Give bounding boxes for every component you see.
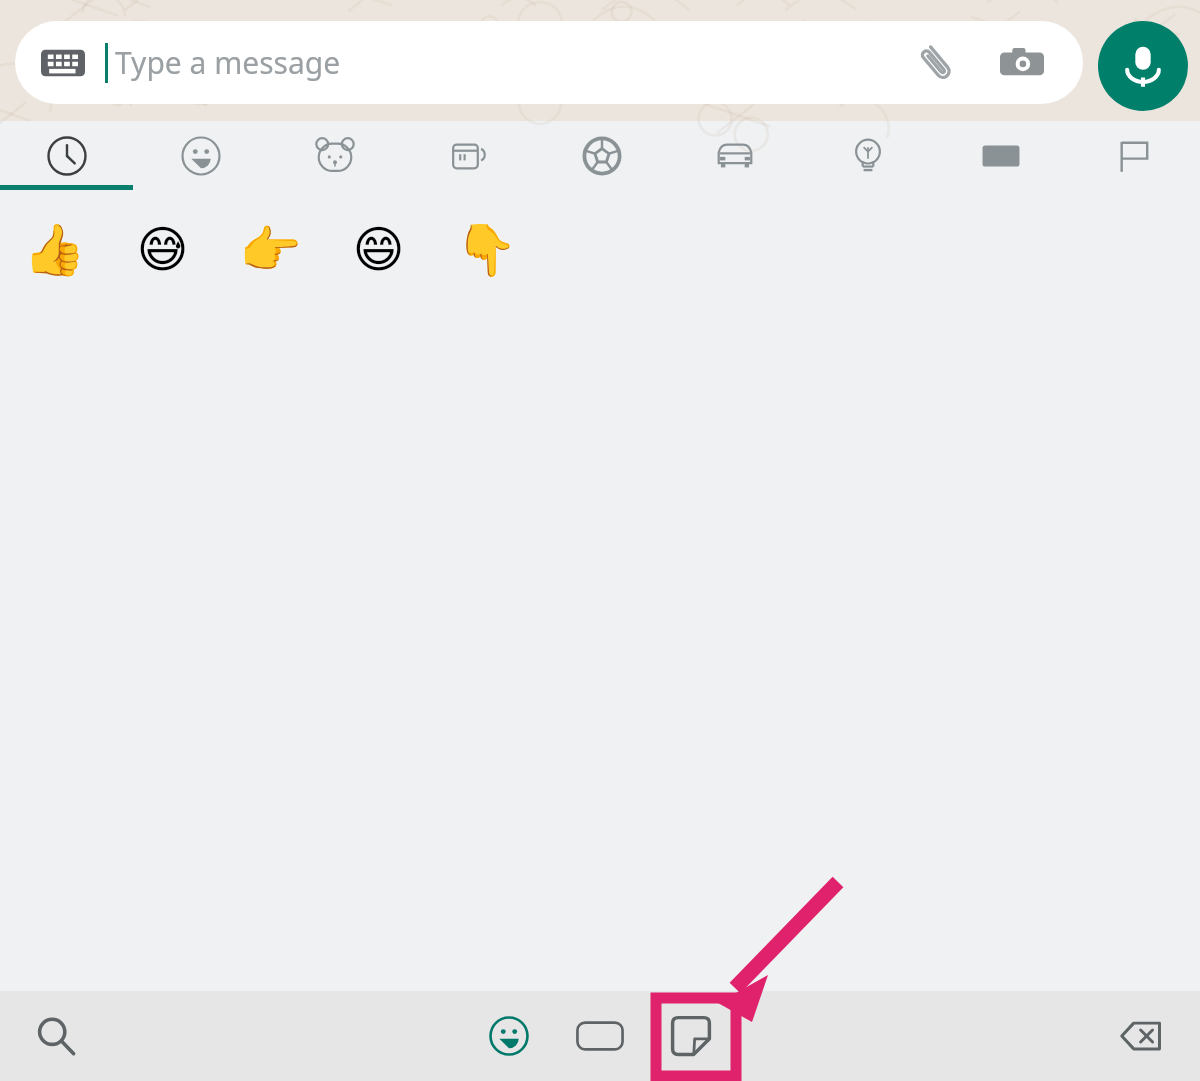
button[interactable]: Camera xyxy=(991,32,1053,94)
staticText: 👍 xyxy=(23,221,86,280)
button[interactable]: GIF xyxy=(567,1003,633,1069)
staticText: Type a message xyxy=(115,42,341,83)
button[interactable]: 👍 xyxy=(0,200,108,300)
button[interactable]: Symbols xyxy=(934,121,1067,190)
button[interactable]: Keyboard xyxy=(15,21,1083,104)
button[interactable]: 😄 xyxy=(324,200,432,300)
staticText: 👉 xyxy=(239,221,302,280)
staticText: 👇 xyxy=(455,221,518,280)
button[interactable]: Flags xyxy=(1067,121,1200,190)
button[interactable]: Backspace xyxy=(1106,1000,1178,1072)
button[interactable]: Travel xyxy=(668,121,801,190)
button[interactable]: Voice message xyxy=(1098,21,1188,111)
button[interactable]: Food xyxy=(402,121,535,190)
button[interactable]: 👇 xyxy=(432,200,540,300)
button[interactable]: Smileys xyxy=(134,121,268,190)
button[interactable]: Objects xyxy=(801,121,934,190)
button[interactable]: 👉 xyxy=(216,200,324,300)
button[interactable]: Attach xyxy=(905,32,967,94)
button[interactable]: Activities xyxy=(535,121,668,190)
button[interactable]: Emoji xyxy=(476,1003,542,1069)
button[interactable]: Search xyxy=(20,1000,92,1072)
button[interactable]: 😅 xyxy=(108,200,216,300)
button[interactable]: Animals xyxy=(268,121,402,190)
button[interactable]: Recent xyxy=(0,121,134,190)
staticText: 😅 xyxy=(136,221,189,279)
button[interactable]: Keyboard xyxy=(35,35,91,91)
button[interactable]: Stickers xyxy=(658,1003,724,1069)
staticText: 😄 xyxy=(352,221,405,279)
